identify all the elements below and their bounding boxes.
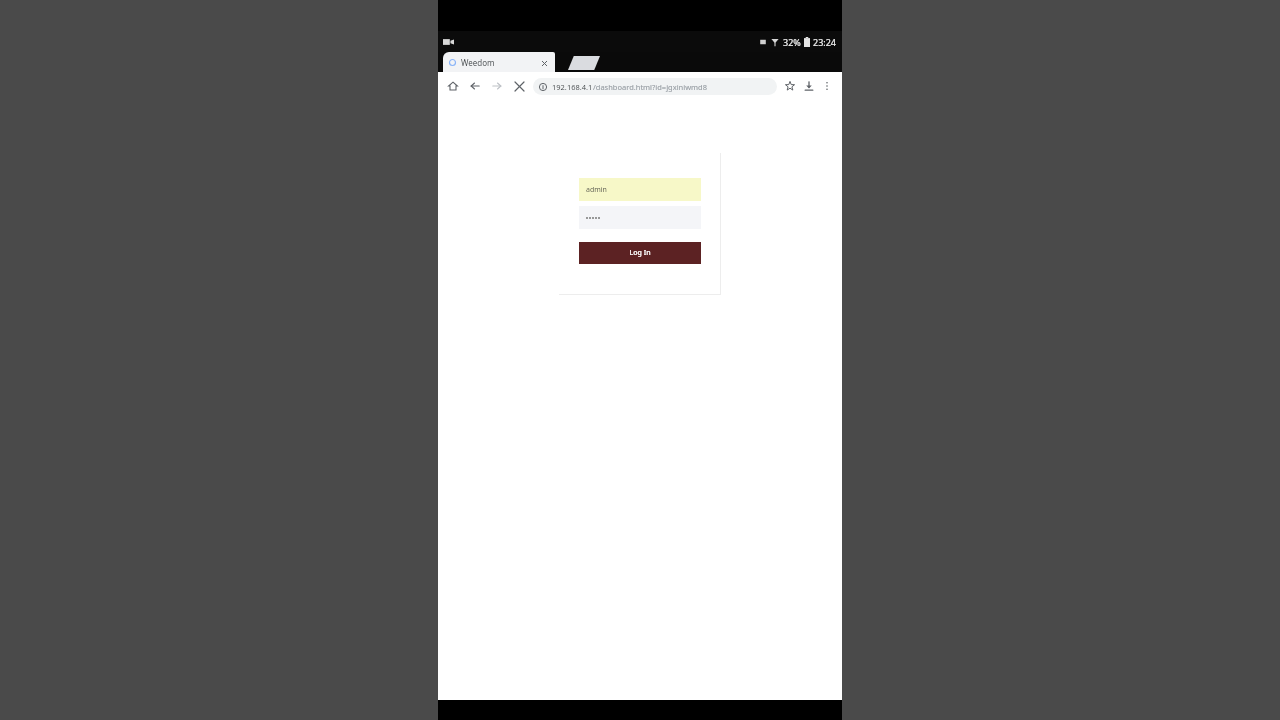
staticText: 192.168.4.1 — [552, 82, 593, 92]
button[interactable]: 192.168.4.1 — [533, 78, 777, 95]
staticText: 23:24 — [813, 36, 837, 48]
button[interactable] — [579, 206, 701, 229]
staticText: /dashboard.html?id=jgxiniwmd8 — [593, 82, 707, 92]
staticText: Log In — [629, 248, 651, 258]
button[interactable]: Other tab — [568, 56, 600, 70]
staticText: 32% — [783, 36, 801, 48]
button[interactable]: Weedom — [443, 52, 555, 72]
button[interactable]: Log In — [579, 242, 701, 264]
button[interactable]: admin — [579, 178, 701, 201]
staticText: Weedom — [461, 57, 539, 68]
button[interactable]: Stop loading — [511, 78, 527, 94]
staticText: admin — [586, 185, 607, 195]
button[interactable]: Back — [467, 78, 483, 94]
button[interactable]: Download — [801, 78, 817, 94]
button[interactable]: Bookmark — [782, 78, 798, 94]
button[interactable]: Home — [445, 78, 461, 94]
button[interactable]: Forward — [489, 78, 505, 94]
button[interactable]: Close tab — [539, 58, 549, 68]
button[interactable]: More options — [819, 78, 835, 94]
